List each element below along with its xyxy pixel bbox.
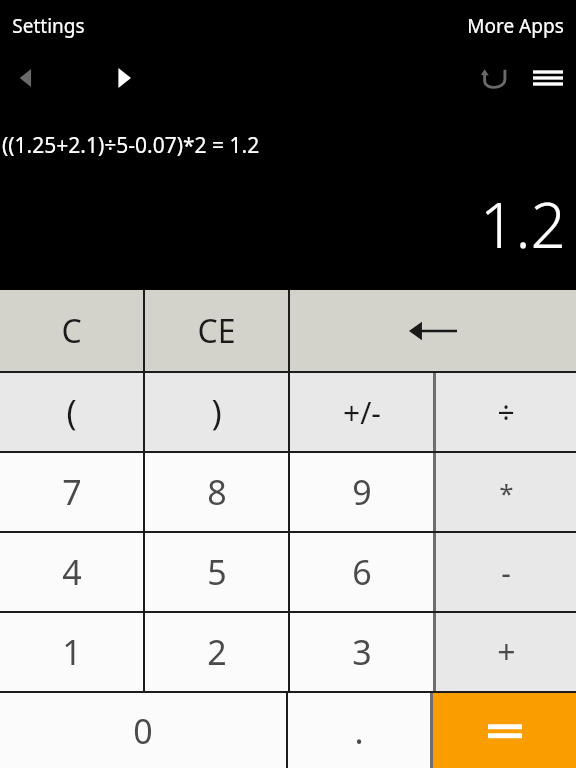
button[interactable]: 7 [0, 453, 143, 531]
button[interactable]: 5 [145, 533, 288, 611]
staticText: + [497, 630, 516, 674]
staticText: 3 [352, 629, 372, 675]
button[interactable]: 3 [290, 613, 433, 691]
button[interactable]: 2 [145, 613, 288, 691]
button[interactable]: 1 [0, 613, 143, 691]
button[interactable]: . [288, 693, 430, 768]
staticText: ) [211, 389, 222, 435]
staticText: ( [66, 389, 77, 435]
staticText: ÷ [497, 392, 515, 433]
staticText: . [354, 708, 364, 754]
button[interactable]: More Apps [455, 7, 576, 45]
staticText: - [501, 552, 511, 593]
button[interactable]: Next [104, 58, 144, 98]
button[interactable]: 8 [145, 453, 288, 531]
staticText: 7 [62, 469, 82, 515]
staticText: More Apps [467, 13, 564, 39]
staticText: * [499, 475, 514, 510]
staticText: 5 [207, 549, 227, 595]
staticText: 1.2 [480, 182, 566, 266]
staticText: 1 [62, 629, 82, 675]
button[interactable]: ) [145, 373, 288, 451]
staticText: CE [197, 309, 236, 353]
button[interactable]: +/- [290, 373, 433, 451]
button[interactable]: Previous [6, 58, 46, 98]
button[interactable]: CE [145, 290, 288, 371]
staticText: +/- [343, 392, 381, 433]
button[interactable]: - [436, 533, 576, 611]
button[interactable]: 6 [290, 533, 433, 611]
button[interactable]: Settings [0, 7, 97, 45]
staticText: 0 [133, 708, 153, 754]
staticText: 9 [352, 469, 372, 515]
button[interactable]: Backspace [290, 290, 576, 371]
staticText: 6 [352, 549, 372, 595]
staticText: Settings [12, 13, 85, 39]
button[interactable]: 0 [0, 693, 286, 768]
button[interactable]: * [436, 453, 576, 531]
staticText: 2 [207, 629, 227, 675]
staticText: ((1.25+2.1)÷5-0.07)*2 = 1.2 [2, 131, 260, 160]
button[interactable]: Menu [524, 54, 572, 102]
button[interactable]: + [436, 613, 576, 691]
button[interactable]: Equals [433, 693, 576, 768]
button[interactable]: 4 [0, 533, 143, 611]
button[interactable]: 9 [290, 453, 433, 531]
button[interactable]: ( [0, 373, 143, 451]
staticText: 8 [207, 469, 227, 515]
button[interactable]: Undo [470, 54, 518, 102]
staticText: 4 [62, 549, 82, 595]
button[interactable]: C [0, 290, 143, 371]
button[interactable]: ÷ [436, 373, 576, 451]
staticText: C [61, 309, 82, 353]
